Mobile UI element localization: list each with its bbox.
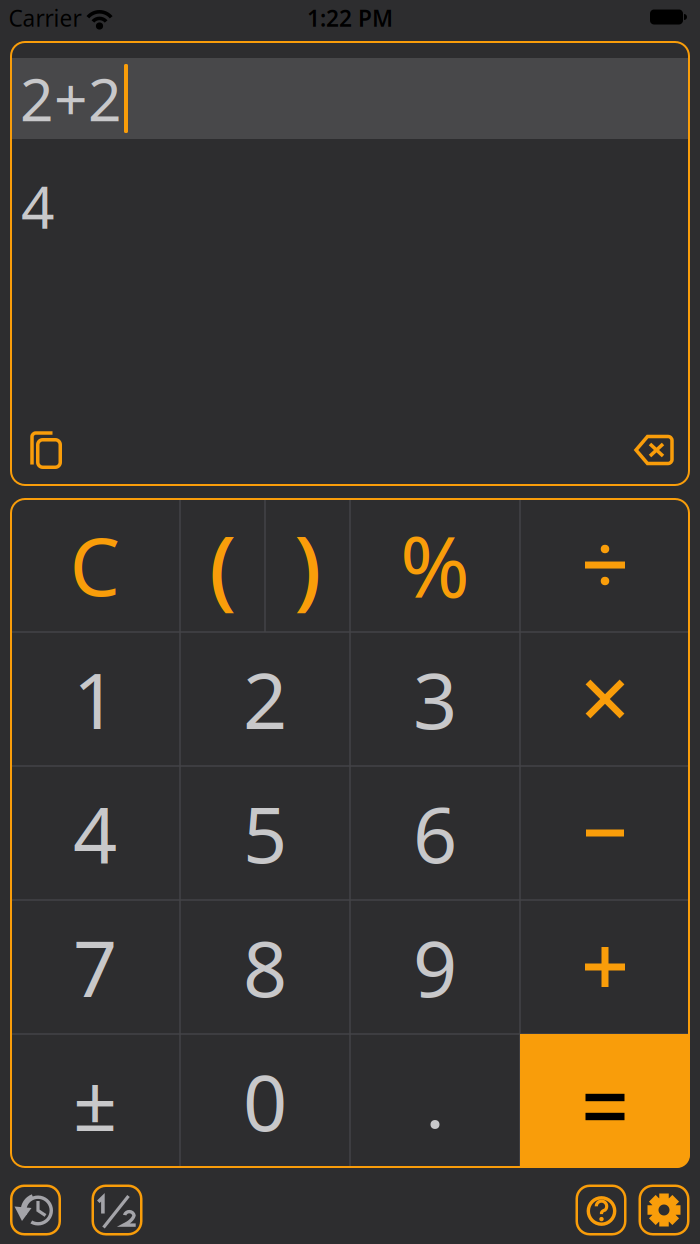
button[interactable]: C bbox=[10, 498, 180, 632]
staticText: 2+2 bbox=[20, 59, 122, 137]
button[interactable]: 2 bbox=[180, 632, 350, 766]
button[interactable]: Multiply bbox=[520, 632, 690, 766]
staticText: 6 bbox=[413, 782, 457, 884]
button[interactable]: ( bbox=[180, 498, 265, 632]
staticText: 1:22 PM bbox=[307, 3, 393, 33]
button[interactable]: 8 bbox=[180, 900, 350, 1034]
button[interactable]: 5 bbox=[180, 766, 350, 900]
button[interactable]: Copy bbox=[30, 431, 62, 469]
button[interactable]: % bbox=[350, 498, 520, 632]
staticText: 7 bbox=[73, 916, 117, 1018]
staticText: ± bbox=[73, 1050, 117, 1152]
button[interactable]: Help bbox=[575, 1184, 626, 1235]
button[interactable]: Divide bbox=[520, 498, 690, 632]
button[interactable]: 0 bbox=[180, 1034, 350, 1168]
staticText: C bbox=[69, 512, 120, 618]
staticText: 9 bbox=[413, 916, 457, 1018]
staticText: 1 bbox=[73, 648, 117, 750]
staticText: 3 bbox=[413, 648, 457, 750]
button[interactable]: Fractions bbox=[91, 1184, 142, 1235]
staticText: ) bbox=[294, 507, 321, 623]
staticText: 0 bbox=[243, 1050, 287, 1152]
button[interactable]: Delete bbox=[634, 434, 674, 466]
staticText: 4 bbox=[21, 167, 55, 245]
staticText: 8 bbox=[243, 916, 287, 1018]
button[interactable]: ± bbox=[10, 1034, 180, 1168]
staticText: % bbox=[400, 509, 470, 621]
button[interactable]: 7 bbox=[10, 900, 180, 1034]
button[interactable]: History bbox=[10, 1184, 61, 1235]
button[interactable]: 1 bbox=[10, 632, 180, 766]
staticText: ( bbox=[209, 507, 236, 623]
button[interactable]: 4 bbox=[10, 766, 180, 900]
button[interactable]: Equals bbox=[520, 1034, 690, 1168]
button[interactable]: Subtract bbox=[520, 766, 690, 900]
button[interactable]: 3 bbox=[350, 632, 520, 766]
staticText: Carrier bbox=[8, 3, 81, 33]
button[interactable]: ) bbox=[265, 498, 350, 632]
button[interactable]: Decimal point bbox=[350, 1034, 520, 1168]
button[interactable]: 9 bbox=[350, 900, 520, 1034]
staticText: 4 bbox=[73, 782, 117, 884]
button[interactable]: 6 bbox=[350, 766, 520, 900]
button[interactable]: Settings bbox=[638, 1184, 689, 1235]
button[interactable]: Add bbox=[520, 900, 690, 1034]
staticText: 5 bbox=[243, 782, 287, 884]
staticText: 2 bbox=[243, 648, 287, 750]
